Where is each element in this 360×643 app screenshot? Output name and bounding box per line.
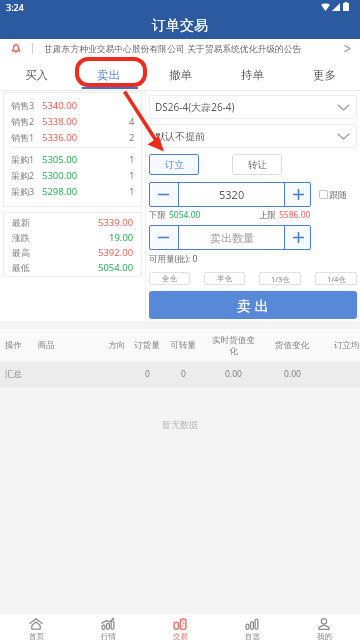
button[interactable]: 销售2 [11, 113, 135, 129]
staticText: 最新 [12, 217, 30, 228]
staticText: 最高 [12, 247, 30, 258]
button[interactable]: 更多 [288, 58, 360, 91]
staticText: 交易 [173, 632, 188, 641]
staticText: 涨跌 [12, 232, 30, 243]
button[interactable]: 采购3 [11, 183, 135, 199]
staticText: 货值变化 [270, 340, 314, 351]
button[interactable]: 卖 出 [149, 291, 357, 319]
staticText: 暂无数据 [162, 419, 198, 430]
other: Notice [11, 43, 21, 54]
staticText: 1 [129, 185, 135, 198]
staticText: 默认不提前 [155, 130, 205, 143]
button[interactable]: 销售1 [11, 129, 135, 145]
staticText: 卖出数量 [210, 231, 254, 245]
staticText: 转让 [248, 159, 267, 171]
staticText: 下限 [149, 209, 169, 221]
staticText: 操作 [5, 340, 22, 351]
button[interactable]: 行情 [72, 614, 144, 643]
button[interactable]: 1/4仓 [315, 272, 357, 285]
staticText: 5305.00 [42, 153, 78, 166]
staticText: 撤单 [169, 68, 192, 82]
button[interactable]: 撤单 [144, 58, 216, 91]
button[interactable]: 1/3仓 [259, 272, 301, 285]
staticText: 方向 [95, 340, 139, 351]
staticText: 首页 [29, 632, 44, 641]
staticText: 订立 [165, 159, 184, 171]
button[interactable]: Notice [0, 39, 360, 58]
staticText: 全仓 [162, 274, 177, 283]
staticText: 5298.00 [42, 185, 78, 198]
staticText: 5338.00 [42, 115, 78, 128]
button[interactable]: 转让 [232, 154, 282, 175]
staticText: 销售1 [11, 131, 35, 143]
staticText: DS26-4(大蒜26-4) [155, 100, 235, 114]
button[interactable]: 自选 [216, 614, 288, 643]
staticText: 销售3 [11, 99, 35, 111]
staticText: 卖出 [97, 68, 120, 82]
staticText: 1 [129, 169, 135, 182]
staticText: 1/4仓 [327, 274, 346, 284]
staticText: 0.00 [284, 368, 301, 380]
staticText: 0 [145, 368, 150, 380]
button[interactable]: 半仓 [204, 272, 245, 285]
button[interactable]: 买入 [0, 58, 72, 91]
button[interactable]: 全仓 [149, 272, 190, 285]
button[interactable]: 采购1 [11, 151, 135, 167]
staticText: 更多 [313, 68, 336, 82]
staticText: 3:24 [6, 1, 24, 13]
staticText: 卖 出 [237, 296, 269, 315]
staticText: 5392.00 [98, 246, 134, 259]
staticText: 甘肃东方种业交易中心股份有限公司 关于贸易系统优化升级的公告 [44, 43, 339, 55]
staticText: 销售2 [11, 115, 35, 127]
button[interactable]: Decrease [149, 225, 178, 250]
staticText: 跟随 [329, 189, 347, 200]
staticText: 半仓 [217, 274, 232, 283]
staticText: 持单 [241, 68, 264, 82]
staticText: 订货量 [130, 340, 164, 351]
staticText: 1/3仓 [271, 274, 290, 284]
staticText: 汇总 [5, 369, 22, 380]
button[interactable]: 销售3 [11, 97, 135, 113]
staticText: 商品 [24, 340, 68, 351]
button[interactable]: 默认不提前 [155, 124, 349, 148]
button[interactable]: 首页 [0, 614, 72, 643]
staticText: 行情 [101, 632, 116, 641]
button[interactable]: 持单 [216, 58, 288, 91]
button[interactable]: Increase [285, 225, 311, 250]
staticText: 可用量(批): 0 [149, 253, 198, 265]
staticText: 2 [129, 131, 135, 144]
staticText: 最低 [12, 262, 30, 273]
staticText: 买入 [25, 68, 48, 82]
staticText: 5339.00 [98, 216, 134, 229]
button[interactable]: DS26-4(大蒜26-4) [155, 95, 349, 119]
staticText: 4 [129, 115, 135, 128]
staticText: 1 [129, 153, 135, 166]
staticText: 采购2 [11, 169, 35, 181]
button[interactable]: Decrease [149, 182, 178, 207]
button[interactable]: 订立 [149, 154, 199, 175]
staticText: 5336.00 [42, 131, 78, 144]
staticText: 上限 [259, 209, 279, 221]
staticText: 5340.00 [42, 99, 78, 112]
staticText: 0.00 [225, 368, 242, 380]
staticText: 订单交易 [152, 17, 208, 35]
button[interactable]: Increase [285, 182, 311, 207]
button[interactable]: 我的 [288, 614, 360, 643]
button[interactable]: 汇总 [0, 361, 360, 387]
staticText: 采购3 [11, 185, 35, 197]
staticText: 19.00 [109, 231, 134, 244]
staticText: 5320 [219, 187, 245, 202]
staticText: 5300.00 [42, 169, 78, 182]
button[interactable]: 交易 [144, 614, 216, 643]
staticText: 5586.00 [279, 209, 311, 221]
staticText: 订立均价 [334, 340, 360, 351]
staticText: 实时货值变化 [211, 335, 256, 356]
staticText: 5054.00 [169, 209, 201, 221]
staticText: 5054.00 [98, 261, 134, 274]
button[interactable]: 采购2 [11, 167, 135, 183]
staticText: 可转量 [166, 340, 200, 351]
staticText: 自选 [245, 632, 260, 641]
button[interactable]: 卖出 [72, 58, 144, 91]
staticText: 我的 [317, 632, 332, 641]
staticText: 采购1 [11, 153, 35, 165]
